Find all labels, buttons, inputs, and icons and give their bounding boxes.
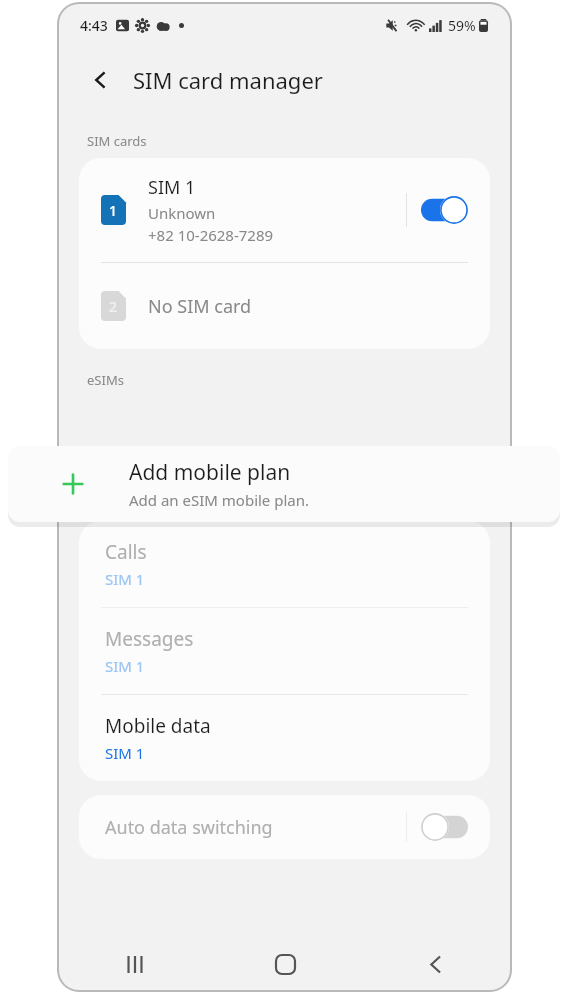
button[interactable]: Back xyxy=(360,938,510,990)
button[interactable]: 2 xyxy=(79,263,490,349)
button[interactable]: Recents xyxy=(59,938,210,990)
button[interactable]: Home xyxy=(210,938,360,990)
staticText: Calls xyxy=(105,539,147,565)
staticText: +82 10-2628-7289 xyxy=(148,225,274,245)
staticText: 4:43 xyxy=(80,16,108,35)
button[interactable]: Add mobile plan xyxy=(8,446,560,522)
staticText: Auto data switching xyxy=(105,815,406,840)
button[interactable]: Mobile data xyxy=(79,695,490,781)
staticText: Messages xyxy=(105,626,194,652)
staticText: Mobile data xyxy=(105,713,211,739)
staticText: SIM 1 xyxy=(105,656,145,676)
button[interactable]: Auto data switching xyxy=(79,795,490,859)
staticText: Preferred SIM card xyxy=(87,495,202,513)
staticText: Add mobile plan xyxy=(129,458,291,487)
button[interactable]: Calls xyxy=(79,521,490,607)
staticText: SIM 1 xyxy=(148,175,196,200)
staticText: No SIM card xyxy=(148,294,252,319)
button[interactable]: Back xyxy=(79,58,123,102)
staticText: Unknown xyxy=(148,203,216,223)
button[interactable]: 1 xyxy=(79,158,490,262)
staticText: SIM 1 xyxy=(105,743,145,763)
staticText: Add an eSIM mobile plan. xyxy=(129,490,310,510)
staticText: SIM cards xyxy=(87,132,147,150)
staticText: SIM card manager xyxy=(133,65,323,95)
staticText: 2 xyxy=(109,297,118,316)
staticText: eSIMs xyxy=(87,371,124,389)
button[interactable]: SIM 1 toggle xyxy=(421,196,468,224)
button[interactable]: Messages xyxy=(79,608,490,694)
staticText: SIM 1 xyxy=(105,569,145,589)
staticText: 59% xyxy=(448,16,476,35)
staticText: 1 xyxy=(109,201,118,220)
